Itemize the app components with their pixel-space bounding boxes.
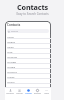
- staticText: Angela: [7, 65, 16, 68]
- button[interactable]: Ashley: [5, 74, 51, 79]
- staticText: Alice: [7, 50, 13, 53]
- staticText: Keypad: [25, 92, 32, 95]
- button[interactable]: Andrew: [5, 59, 51, 64]
- staticText: Groups: [16, 92, 23, 95]
- staticText: Adam: [7, 45, 14, 48]
- staticText: Benjamin: [7, 90, 19, 93]
- staticText: Austin: [7, 80, 15, 83]
- staticText: Contacts: [6, 92, 14, 95]
- button[interactable]: Contacts: [5, 88, 15, 100]
- staticText: Ashley: [7, 75, 15, 78]
- staticText: More: [44, 92, 49, 95]
- button[interactable]: Amanda: [5, 54, 51, 59]
- staticText: Abigail: [7, 40, 16, 43]
- staticText: Recents: [34, 92, 41, 95]
- staticText: Aaron: [7, 35, 15, 38]
- staticText: Andrew: [7, 60, 16, 63]
- button[interactable]: Recents: [33, 88, 42, 100]
- button[interactable]: Angela: [5, 64, 51, 69]
- button[interactable]: Ava: [5, 84, 51, 89]
- staticText: Ava: [7, 85, 12, 88]
- button[interactable]: Search: [7, 29, 49, 33]
- staticText: Anthony: [7, 70, 17, 73]
- button[interactable]: Adam: [5, 44, 51, 49]
- staticText: Search: [11, 30, 19, 33]
- staticText: Contacts: [17, 2, 48, 12]
- button[interactable]: Anthony: [5, 69, 51, 74]
- button[interactable]: Abigail: [5, 39, 51, 44]
- button[interactable]: Benjamin: [5, 89, 51, 94]
- button[interactable]: Alice: [5, 49, 51, 54]
- button[interactable]: Aaron: [5, 34, 51, 39]
- button[interactable]: Austin: [5, 79, 51, 84]
- staticText: Easy to Search Contacts: [16, 12, 49, 16]
- button[interactable]: More: [42, 88, 51, 100]
- button[interactable]: Groups: [15, 88, 24, 100]
- staticText: Contacts: [7, 23, 21, 27]
- staticText: Amanda: [7, 55, 17, 58]
- button[interactable]: Keypad: [24, 88, 33, 100]
- button[interactable]: Contacts: [5, 21, 51, 29]
